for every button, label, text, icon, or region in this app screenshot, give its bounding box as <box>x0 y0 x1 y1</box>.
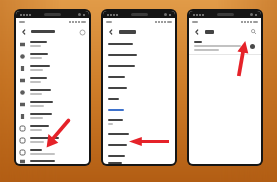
button[interactable] <box>16 158 89 164</box>
button[interactable] <box>103 60 175 71</box>
button[interactable] <box>16 146 89 158</box>
button[interactable] <box>16 98 89 110</box>
button[interactable] <box>16 38 89 50</box>
button[interactable] <box>16 50 89 62</box>
button[interactable] <box>16 122 89 134</box>
button[interactable] <box>103 71 175 82</box>
button[interactable]: Back <box>107 28 114 35</box>
button[interactable] <box>103 82 175 93</box>
button[interactable] <box>103 49 175 60</box>
button[interactable] <box>103 93 175 104</box>
button[interactable] <box>103 128 175 139</box>
button[interactable] <box>16 62 89 74</box>
button[interactable] <box>16 134 89 146</box>
button[interactable]: Toggle <box>189 38 261 54</box>
button[interactable] <box>103 38 175 49</box>
button[interactable]: Back <box>20 28 27 35</box>
button[interactable]: Search <box>250 28 257 35</box>
button[interactable]: Back <box>193 28 200 35</box>
button[interactable] <box>16 110 89 122</box>
button[interactable] <box>103 150 175 161</box>
button[interactable]: Help <box>79 29 85 35</box>
button[interactable]: Toggle <box>248 42 256 50</box>
button[interactable] <box>16 74 89 86</box>
button[interactable] <box>16 86 89 98</box>
button[interactable] <box>103 161 175 164</box>
button[interactable] <box>103 104 175 115</box>
button[interactable] <box>103 139 175 150</box>
button[interactable] <box>103 115 175 128</box>
